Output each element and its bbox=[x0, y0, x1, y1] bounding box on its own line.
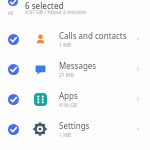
other: Open Settings bbox=[134, 125, 142, 133]
button[interactable]: Settings bbox=[0, 114, 150, 144]
staticText: 1 MB bbox=[59, 42, 71, 49]
other: Open Messages bbox=[134, 65, 142, 73]
staticText: Messages bbox=[59, 60, 97, 71]
button[interactable]: Select all bbox=[0, 0, 150, 9]
staticText: 21 MB bbox=[59, 72, 74, 79]
staticText: Calls and contacts bbox=[59, 30, 127, 41]
button[interactable]: Messages bbox=[0, 54, 150, 84]
staticText: Settings bbox=[59, 120, 90, 131]
staticText: 4.54 GB bbox=[59, 102, 78, 109]
button[interactable]: Apps bbox=[0, 84, 150, 114]
other: Open Calls and contacts bbox=[134, 35, 142, 43]
other: Select all bbox=[8, 0, 18, 6]
staticText: All bbox=[8, 10, 14, 16]
staticText: 4.97 GB / About 2 minutes bbox=[25, 9, 87, 16]
other: Open Apps bbox=[134, 95, 142, 103]
button[interactable]: Calls and contacts bbox=[0, 24, 150, 54]
staticText: 1 MB bbox=[59, 132, 71, 139]
staticText: 6 selected bbox=[25, 0, 64, 9]
staticText: Apps bbox=[59, 90, 78, 101]
